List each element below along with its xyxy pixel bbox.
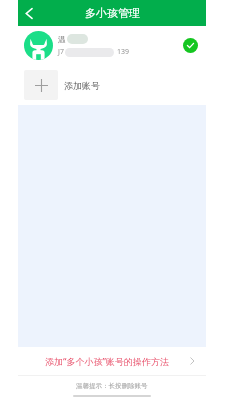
button[interactable]: Back bbox=[18, 0, 40, 26]
button[interactable]: 温 bbox=[18, 26, 206, 65]
staticText: 温馨提示：长按删除账号 bbox=[76, 382, 148, 390]
staticText: 139 bbox=[117, 47, 130, 57]
button[interactable]: Selected bbox=[183, 38, 198, 53]
staticText: J7 bbox=[58, 47, 64, 57]
button[interactable]: 添加“多个小孩”账号的操作方法 bbox=[18, 347, 206, 375]
staticText: 添加“多个小孩”账号的操作方法 bbox=[45, 355, 169, 367]
button[interactable]: 添加账号 bbox=[18, 65, 206, 105]
staticText: 添加账号 bbox=[64, 80, 100, 91]
staticText: 温 bbox=[58, 35, 66, 44]
staticText: 多小孩管理 bbox=[85, 6, 140, 20]
